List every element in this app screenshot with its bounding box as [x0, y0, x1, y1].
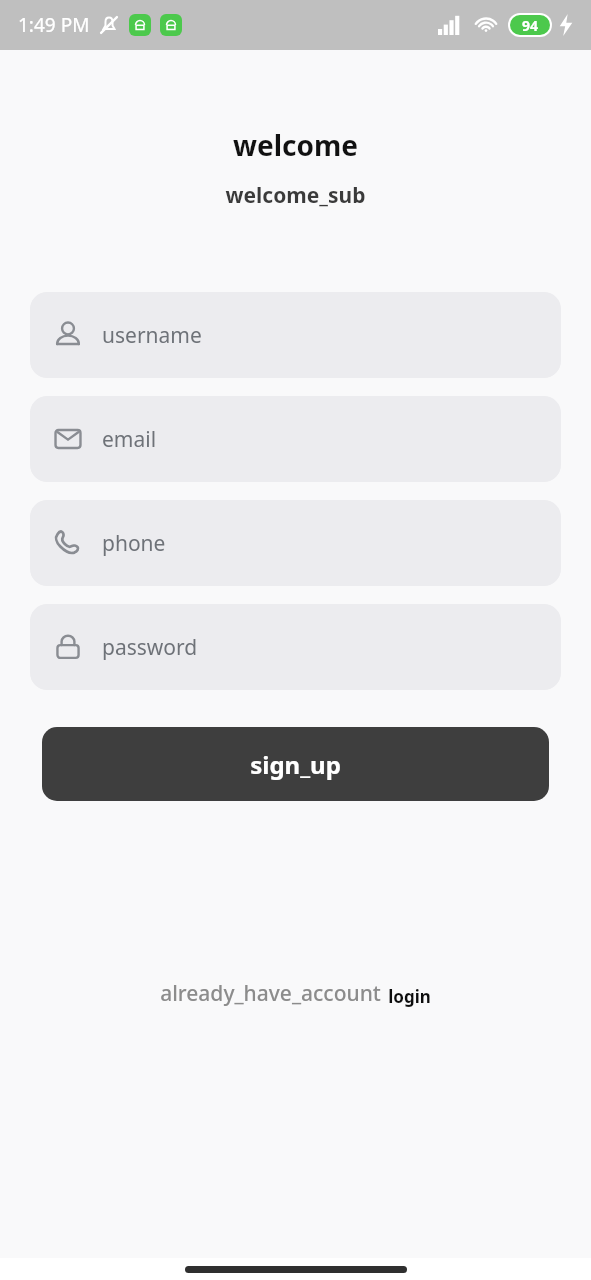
button[interactable]: username [30, 292, 561, 378]
button[interactable]: password [30, 604, 561, 690]
other: App notification [129, 14, 151, 36]
staticText: phone [102, 529, 166, 558]
staticText: 1:49 PM [18, 12, 90, 38]
staticText: login [388, 985, 431, 1008]
staticText: username [102, 321, 202, 350]
button[interactable]: login [388, 985, 431, 1008]
staticText: sign_up [250, 748, 341, 781]
staticText: 94 [522, 16, 539, 35]
staticText: welcome [0, 126, 591, 164]
button[interactable]: sign_up [42, 727, 549, 801]
staticText: welcome_sub [0, 181, 591, 210]
staticText: password [102, 633, 198, 662]
staticText: already_have_account [160, 979, 381, 1008]
button[interactable]: email [30, 396, 561, 482]
other: App notification [160, 14, 182, 36]
button[interactable]: phone [30, 500, 561, 586]
staticText: email [102, 425, 157, 454]
